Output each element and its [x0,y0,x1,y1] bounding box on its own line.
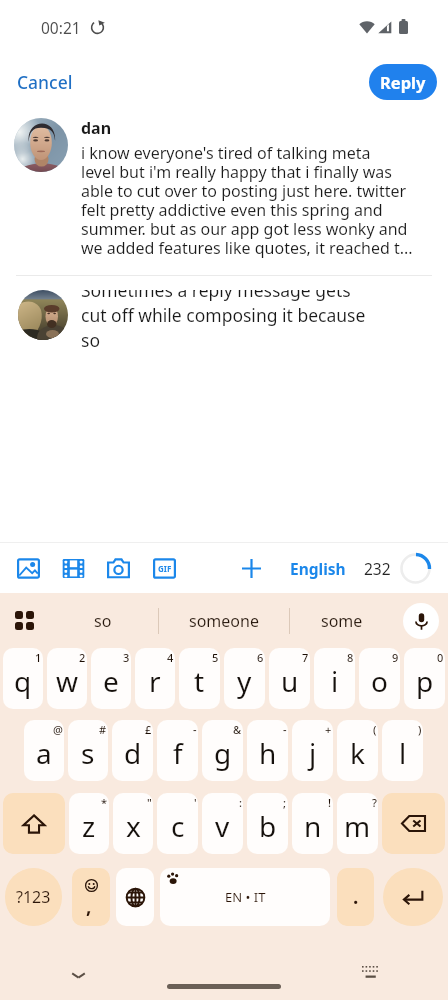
button[interactable]: so [48,593,158,648]
staticText: some [321,610,363,632]
staticText: 6 [257,650,264,665]
staticText: 7 [302,650,309,665]
staticText: , [86,893,92,919]
staticText: ; [283,795,287,810]
staticText: f [173,734,183,772]
button[interactable]: Add image [11,551,45,585]
button[interactable]: Back [65,962,91,988]
button[interactable]: some [290,593,394,648]
button[interactable]: 2 [47,648,87,709]
button[interactable]: : [202,793,243,854]
button[interactable]: ?123 [5,868,62,926]
button[interactable]: EN • IT [160,868,330,926]
button[interactable]: ) [382,720,423,781]
staticText: s [81,734,95,772]
staticText: m [344,807,371,845]
button[interactable]: Gboard menu [0,593,48,648]
staticText: + [325,722,332,737]
button[interactable]: 1 [3,648,43,709]
staticText: Reply [380,71,426,93]
button[interactable]: Change language [116,868,154,926]
staticText: c [171,807,185,845]
staticText: z [82,807,96,845]
button[interactable]: £ [112,720,153,781]
button[interactable]: Backspace [382,793,445,854]
button[interactable]: Shift [3,793,65,854]
staticText: w [56,662,79,700]
staticText: £ [145,722,152,737]
staticText: o [371,662,388,700]
button[interactable]: 8 [314,648,355,709]
button[interactable]: Camera [101,551,135,585]
button[interactable]: Add video [56,551,90,585]
button[interactable]: English [285,552,351,585]
staticText: someone [189,610,259,632]
button[interactable]: Reply [369,64,437,100]
button[interactable]: + [292,720,333,781]
staticText: - [283,722,287,737]
button[interactable]: Voice input [394,593,448,648]
staticText: g [214,734,232,772]
staticText: Sometimes a reply message gets cut off w… [81,290,366,352]
button[interactable]: 0 [404,648,445,709]
staticText: 232 [364,558,391,579]
staticText: dan [81,117,112,139]
staticText: 4 [167,650,174,665]
staticText: # [99,722,107,737]
staticText: u [281,662,299,700]
staticText: y [237,662,252,700]
button[interactable]: someone [159,593,289,648]
staticText: - [193,722,197,737]
staticText: v [215,807,230,845]
staticText: @ [53,722,63,737]
staticText: ( [373,722,377,737]
button[interactable]: Cancel [5,64,85,100]
button[interactable]: 3 [91,648,131,709]
button[interactable]: Add GIF [147,551,181,585]
staticText: i [331,662,339,700]
button[interactable]: ! [292,793,333,854]
staticText: 2 [79,650,86,665]
staticText: x [126,807,141,845]
staticText: ?123 [16,886,51,908]
button[interactable]: Hide keyboard [357,961,383,987]
button[interactable]: Enter [383,868,443,926]
button[interactable]: 9 [359,648,400,709]
staticText: ' [194,795,197,810]
button[interactable]: Emoji and comma [72,868,110,926]
staticText: 0 [437,650,444,665]
staticText: d [124,734,142,772]
staticText: so [94,610,112,632]
button[interactable]: Add [234,551,268,585]
button[interactable]: 6 [224,648,265,709]
staticText: : [239,795,242,810]
staticText: EN • IT [225,888,266,906]
staticText: j [309,734,317,772]
button[interactable]: ; [247,793,288,854]
staticText: Cancel [17,70,73,94]
staticText: n [304,807,322,845]
button[interactable]: ( [337,720,378,781]
button[interactable]: 5 [179,648,220,709]
staticText: ! [328,795,332,810]
button[interactable]: - [247,720,288,781]
button[interactable]: " [113,793,153,854]
staticText: 1 [35,650,42,665]
button[interactable]: * [69,793,109,854]
staticText: b [259,807,277,845]
staticText: 3 [123,650,130,665]
staticText: & [233,722,242,737]
button[interactable]: & [202,720,243,781]
button[interactable]: - [157,720,198,781]
staticText: English [290,558,346,579]
button[interactable]: ' [157,793,198,854]
button[interactable]: . [337,868,374,926]
staticText: i know everyone's tired of talking meta … [81,142,413,259]
button[interactable]: ? [337,793,378,854]
staticText: * [101,795,108,810]
button[interactable]: @ [24,720,64,781]
button[interactable]: 4 [135,648,175,709]
staticText: . [353,884,359,910]
button[interactable]: 7 [269,648,310,709]
button[interactable]: # [68,720,108,781]
